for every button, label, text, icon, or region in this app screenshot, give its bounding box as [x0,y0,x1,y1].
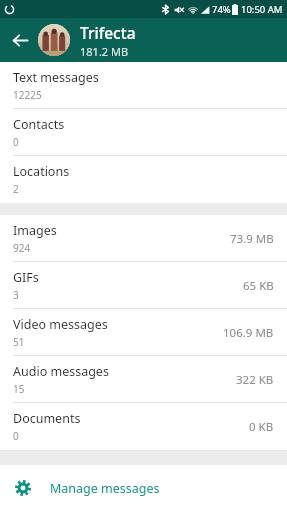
staticText: Manage messages [50,480,160,497]
button[interactable]: Images [0,215,287,262]
staticText: Trifecta [80,22,136,43]
staticText: Locations [13,163,70,180]
staticText: 10:50 AM [241,3,283,16]
staticText: Documents [13,410,81,427]
button[interactable]: Documents [0,403,287,450]
staticText: 3 [13,288,19,302]
button[interactable]: Profile photo [38,24,70,56]
button[interactable]: Audio messages [0,356,287,403]
staticText: 73.9 MB [230,231,274,247]
staticText: 65 KB [243,278,274,294]
staticText: 924 [13,241,31,255]
button[interactable]: Video messages [0,309,287,356]
staticText: 2 [13,182,19,196]
staticText: 106.9 MB [223,325,274,341]
button[interactable]: GIFs [0,262,287,309]
staticText: 0 KB [249,419,274,435]
staticText: Contacts [13,116,65,133]
staticText: 181.2 MB [80,44,129,59]
staticText: 12225 [13,88,42,102]
button[interactable]: Locations [0,156,287,203]
button[interactable]: Contacts [0,109,287,156]
staticText: Audio messages [13,363,109,380]
staticText: 322 KB [236,372,274,388]
staticText: GIFs [13,269,39,286]
button[interactable]: Text messages [0,62,287,109]
staticText: 51 [13,335,25,349]
staticText: Images [13,222,57,239]
staticText: Video messages [13,316,108,333]
staticText: Text messages [13,69,99,86]
staticText: 15 [13,382,25,396]
button[interactable]: Back [6,26,34,54]
button[interactable]: Manage messages [0,465,287,511]
staticText: 0 [13,135,19,149]
staticText: 74% [212,3,231,16]
staticText: 0 [13,429,19,443]
